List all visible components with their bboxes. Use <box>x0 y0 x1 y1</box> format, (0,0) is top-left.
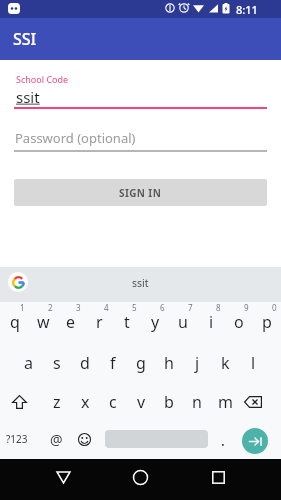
button[interactable]: b <box>155 383 183 421</box>
staticText: w <box>37 311 50 333</box>
staticText: e <box>66 311 76 333</box>
staticText: c <box>109 391 117 413</box>
button[interactable] <box>232 383 274 421</box>
staticText: 8 <box>216 302 221 313</box>
button[interactable] <box>0 383 39 421</box>
staticText: 0 <box>272 302 277 313</box>
staticText: b <box>164 391 174 413</box>
staticText: t <box>124 311 130 333</box>
button[interactable]: g <box>127 344 155 382</box>
staticText: f <box>110 352 116 374</box>
staticText: k <box>221 352 230 374</box>
button[interactable]: s <box>43 344 71 382</box>
staticText: 1 <box>20 302 25 313</box>
staticText: p <box>262 311 272 333</box>
button[interactable]: v <box>127 383 155 421</box>
button[interactable]: k <box>211 344 239 382</box>
button[interactable]: r <box>85 302 113 341</box>
staticText: 7 <box>188 302 193 313</box>
button[interactable]: c <box>99 383 127 421</box>
staticText: 6 <box>160 302 165 313</box>
button[interactable] <box>8 272 28 292</box>
staticText: v <box>137 391 146 413</box>
staticText: School Code <box>16 73 69 85</box>
staticText: 3 <box>76 302 81 313</box>
staticText: d <box>80 352 90 374</box>
staticText: y <box>151 311 160 333</box>
staticText: x <box>81 391 90 413</box>
button[interactable]: h <box>155 344 183 382</box>
staticText: SSI <box>13 28 37 50</box>
button[interactable]: ?123 <box>0 420 34 458</box>
staticText: @ <box>50 430 63 449</box>
button[interactable]: u <box>169 302 197 341</box>
button[interactable]: p <box>253 302 281 341</box>
staticText: l <box>251 352 256 374</box>
button[interactable]: j <box>183 344 211 382</box>
button[interactable] <box>48 462 78 492</box>
button[interactable]: w <box>29 302 57 341</box>
button[interactable]: m <box>211 383 239 421</box>
staticText: ssit <box>132 276 149 290</box>
button[interactable]: t <box>113 302 141 341</box>
staticText: 8:11 <box>236 2 258 17</box>
button[interactable] <box>242 428 268 454</box>
button[interactable]: n <box>183 383 211 421</box>
staticText: ?123 <box>6 432 28 446</box>
staticText: o <box>234 311 244 333</box>
staticText: g <box>136 352 146 374</box>
button[interactable]: i <box>197 302 225 341</box>
staticText: r <box>96 311 103 333</box>
staticText: u <box>178 311 188 333</box>
staticText: SIGN IN <box>119 186 162 200</box>
staticText: 2 <box>48 302 53 313</box>
button[interactable]: q <box>0 302 29 341</box>
button[interactable] <box>203 462 233 492</box>
staticText: s <box>53 352 61 374</box>
button[interactable]: d <box>71 344 99 382</box>
button[interactable]: y <box>141 302 169 341</box>
staticText: h <box>164 352 174 374</box>
staticText: 5 <box>132 302 137 313</box>
button[interactable]: @ <box>42 420 70 458</box>
button[interactable]: l <box>239 344 267 382</box>
button[interactable] <box>70 420 98 458</box>
staticText: n <box>192 391 202 413</box>
staticText: z <box>53 391 61 413</box>
staticText: i <box>209 311 214 333</box>
button[interactable]: x <box>71 383 99 421</box>
staticText: j <box>195 352 200 374</box>
button[interactable]: z <box>42 383 71 421</box>
button[interactable]: a <box>14 344 43 382</box>
staticText: ssit <box>16 87 40 107</box>
staticText: m <box>218 391 233 413</box>
button[interactable]: e <box>57 302 85 341</box>
staticText: 4 <box>104 302 109 313</box>
staticText: . <box>221 431 225 450</box>
button[interactable]: o <box>225 302 253 341</box>
button[interactable]: SIGN IN <box>14 179 267 206</box>
staticText: q <box>10 311 20 333</box>
button[interactable]: . <box>210 421 236 459</box>
button[interactable]: f <box>99 344 127 382</box>
staticText: Password (optional) <box>15 129 136 147</box>
staticText: a <box>24 352 33 374</box>
staticText: 9 <box>244 302 249 313</box>
button[interactable] <box>125 462 155 492</box>
